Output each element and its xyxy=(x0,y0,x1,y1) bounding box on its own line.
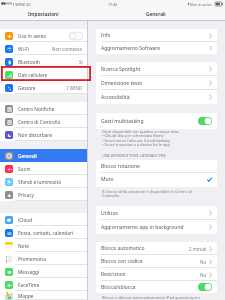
staticText: USA INTERRUTTORE LATERALE PER: xyxy=(102,153,167,158)
staticText: • Scorri verso l'alto per il multitaskin… xyxy=(102,138,170,143)
staticText: Dati cellulare xyxy=(18,72,48,78)
staticText: Gesti multitasking xyxy=(101,118,144,125)
button[interactable]: Gestore xyxy=(0,81,87,94)
staticText: Privacy xyxy=(18,192,34,198)
staticText: Note xyxy=(18,243,29,249)
staticText: Il blocco della rotazione è disponibile … xyxy=(102,189,192,194)
staticText: Info xyxy=(101,32,111,39)
button[interactable]: Uso in aereo xyxy=(0,29,87,42)
button[interactable]: Accessibilità xyxy=(96,90,217,104)
button[interactable]: Dati cellulare xyxy=(0,68,87,81)
button[interactable]: Restrizioni xyxy=(96,268,217,281)
button[interactable]: Utilizzo xyxy=(96,206,217,220)
button[interactable]: Blocco con codice xyxy=(96,255,217,268)
button[interactable]: Non disturbare xyxy=(0,128,87,141)
staticText: Restrizioni xyxy=(101,271,126,278)
button[interactable]: Posta, contatti, calendari xyxy=(0,226,87,239)
staticText: • Scorri a sinistra o a destra fra le ap… xyxy=(102,142,170,147)
staticText: Sì xyxy=(79,59,83,65)
staticText: Centro di Controllo xyxy=(18,119,61,125)
staticText: Wi-Fi xyxy=(18,46,29,52)
button[interactable]: Aggiornamento Software xyxy=(96,42,217,54)
button[interactable]: Promemoria xyxy=(0,252,87,265)
staticText: Posta, contatti, calendari xyxy=(18,230,74,236)
button[interactable]: Ricerca Spotlight xyxy=(96,62,217,76)
button[interactable]: Suoni xyxy=(0,162,87,175)
button[interactable]: Aggiornamento app in background xyxy=(96,220,217,234)
staticText: Suoni xyxy=(18,166,31,172)
staticText: 17:46 xyxy=(108,2,118,7)
button[interactable]: Note xyxy=(0,239,87,252)
button[interactable]: Sfondi e luminosità xyxy=(0,175,87,188)
staticText: Non connesso xyxy=(52,46,83,52)
staticText: Muto xyxy=(101,176,114,183)
button[interactable]: Blocca/sblocca xyxy=(96,281,217,293)
button[interactable] xyxy=(198,283,212,291)
staticText: Gesti disponibili con quattro o cinque d… xyxy=(102,129,180,134)
button[interactable]: Mappe xyxy=(0,291,87,300)
staticText: Generali xyxy=(146,11,166,18)
staticText: Controllo. xyxy=(102,193,120,198)
button[interactable]: Wi-Fi xyxy=(0,42,87,55)
staticText: Blocco rotazione xyxy=(101,163,140,170)
button[interactable]: Muto xyxy=(96,173,217,186)
staticText: No xyxy=(200,259,207,265)
staticText: Blocco automatico xyxy=(101,245,145,252)
staticText: Aggiornamento Software xyxy=(101,45,161,52)
button[interactable]: Dimensione testo xyxy=(96,76,217,90)
button[interactable]: Info xyxy=(96,29,217,42)
staticText: Mappe xyxy=(18,293,34,299)
button[interactable]: Blocco rotazione xyxy=(96,160,217,173)
staticText: • Chiudi dita per schermata Home xyxy=(102,133,164,138)
staticText: Gestore xyxy=(18,85,36,91)
staticText: Utilizzo xyxy=(101,210,119,217)
button[interactable]: FaceTime xyxy=(0,278,87,291)
staticText: Accessibilità xyxy=(101,94,130,101)
staticText: No xyxy=(200,272,207,278)
staticText: I WIND xyxy=(67,85,83,91)
staticText: Dimensione testo xyxy=(101,80,143,87)
button[interactable] xyxy=(198,117,212,125)
staticText: Blocco con codice xyxy=(101,258,143,265)
button[interactable]: Centro Notifiche xyxy=(0,102,87,115)
staticText: Messaggi xyxy=(18,269,40,275)
staticText: Bluetooth xyxy=(18,59,41,65)
staticText: Sfondi e luminosità xyxy=(18,179,61,185)
staticText: Non in carica xyxy=(190,2,212,7)
button[interactable]: Privacy xyxy=(0,188,87,201)
button[interactable]: Centro di Controllo xyxy=(0,115,87,128)
button[interactable] xyxy=(69,32,83,40)
button[interactable]: iCloud xyxy=(0,213,87,226)
button[interactable]: Blocco automatico xyxy=(96,242,217,255)
staticText: Ricerca Spotlight xyxy=(101,66,141,73)
staticText: iCloud xyxy=(18,217,33,223)
button[interactable]: Bluetooth xyxy=(0,55,87,68)
staticText: I WIND xyxy=(13,2,26,7)
staticText: 2 minuti xyxy=(189,246,207,252)
staticText: Blocca/sblocca xyxy=(101,284,136,291)
staticText: Aggiornamento app in background xyxy=(101,224,184,231)
staticText: Centro Notifiche xyxy=(18,106,55,112)
button[interactable]: Messaggi xyxy=(0,265,87,278)
staticText: Uso in aereo xyxy=(18,33,47,39)
staticText: FaceTime xyxy=(18,282,40,288)
staticText: Promemoria xyxy=(18,256,46,262)
button[interactable]: Gesti multitasking xyxy=(96,113,217,129)
staticText: Impostazioni xyxy=(28,11,59,18)
button[interactable]: Generali xyxy=(0,149,87,162)
staticText: 3G xyxy=(26,2,31,7)
staticText: Blocca e sblocca automaticamente iPad qu… xyxy=(102,295,201,300)
staticText: Generali xyxy=(18,153,37,159)
staticText: Non disturbare xyxy=(18,132,52,138)
